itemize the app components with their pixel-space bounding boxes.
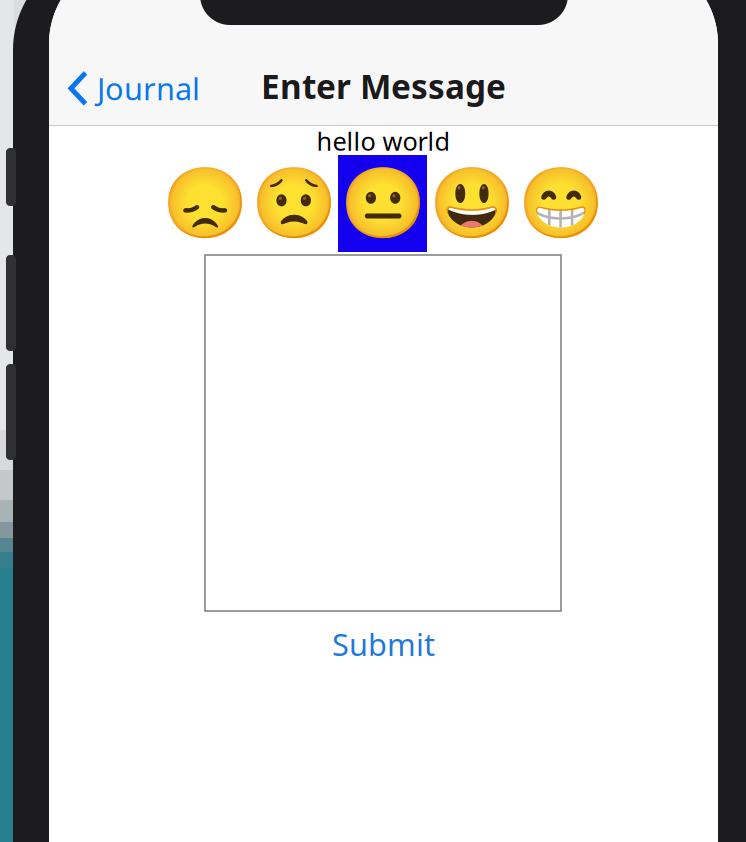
button[interactable]: Neutral xyxy=(338,155,427,252)
button[interactable]: Sad xyxy=(249,155,338,252)
button[interactable]: Very happy xyxy=(516,155,605,252)
button[interactable]: Submit xyxy=(49,624,718,664)
staticText: 😞 xyxy=(161,164,247,243)
button[interactable]: Happy xyxy=(427,155,516,252)
staticText: Journal xyxy=(97,68,200,109)
staticText: Submit xyxy=(332,624,435,664)
staticText: Enter Message xyxy=(261,64,506,108)
staticText: 😁 xyxy=(517,164,603,243)
staticText: 😃 xyxy=(428,164,514,243)
staticText: 😟 xyxy=(250,164,336,243)
button[interactable]: Very sad xyxy=(160,155,249,252)
button[interactable]: Journal xyxy=(61,63,206,114)
staticText: hello world xyxy=(316,124,450,158)
staticText: 😐 xyxy=(339,164,425,243)
